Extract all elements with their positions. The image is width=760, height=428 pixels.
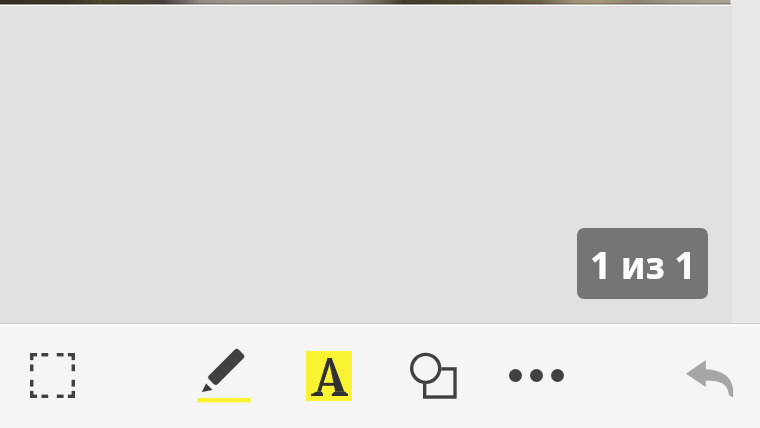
staticText: 1 из 1: [590, 239, 696, 289]
button[interactable]: Shapes: [396, 337, 473, 414]
button[interactable]: Undo: [670, 337, 747, 414]
button[interactable]: More options: [498, 337, 575, 414]
button[interactable]: Select: [14, 337, 91, 414]
button[interactable]: Draw: [185, 337, 262, 414]
button[interactable]: 1 из 1: [577, 228, 708, 299]
button[interactable]: Text: [290, 337, 367, 414]
